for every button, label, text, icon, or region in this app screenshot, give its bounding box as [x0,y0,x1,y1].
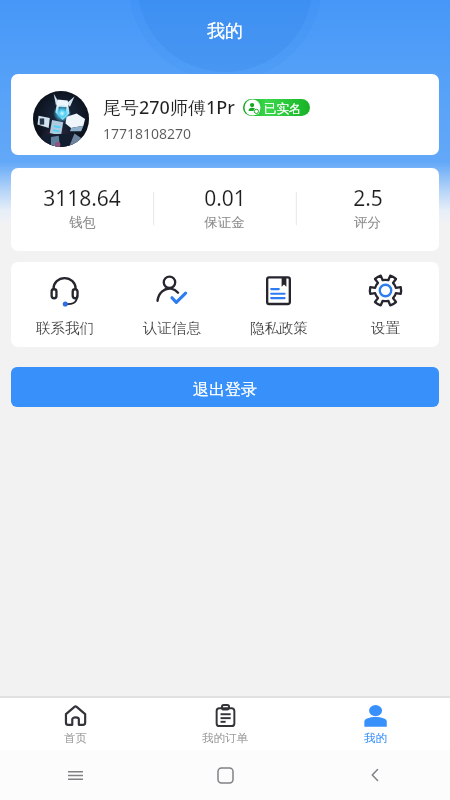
staticText: 认证信息 [143,319,201,337]
staticText: 联系我们 [36,319,94,337]
button[interactable]: 设置 [332,262,439,347]
staticText: 隐私政策 [250,319,308,337]
staticText: 已实名 [264,101,302,116]
button[interactable]: 退出登录 [11,367,439,407]
button[interactable]: 联系我们 [11,262,118,347]
button[interactable]: Home [150,750,300,800]
staticText: 尾号270师傅1Pr [103,95,235,120]
button[interactable]: 首页 [0,698,150,750]
button[interactable]: 我的 [300,698,450,750]
button[interactable]: 3118.64 [11,168,153,247]
staticText: 保证金 [204,214,245,231]
staticText: 2.5 [353,184,383,213]
button[interactable]: Recent apps [0,750,150,800]
button[interactable]: 我的订单 [150,698,300,750]
staticText: 3118.64 [43,184,121,213]
button[interactable]: Back [300,750,450,800]
button[interactable]: 隐私政策 [225,262,332,347]
staticText: 退出登录 [193,380,257,400]
button[interactable]: 2.5 [296,168,439,247]
staticText: 17718108270 [103,124,192,143]
button[interactable]: 认证信息 [118,262,225,347]
button[interactable]: 0.01 [153,168,296,247]
staticText: 设置 [371,319,400,337]
staticText: 钱包 [69,214,96,231]
staticText: 0.01 [204,184,246,213]
staticText: 我的订单 [202,731,248,745]
button[interactable]: 尾号270师傅1Pr [11,74,439,155]
staticText: 我的 [207,20,243,43]
staticText: 我的 [364,731,387,745]
staticText: 评分 [354,214,381,231]
staticText: 首页 [64,731,87,745]
